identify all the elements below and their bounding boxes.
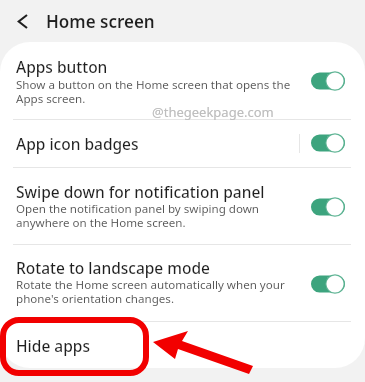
button[interactable]: Swipe down for notification panel bbox=[0, 168, 365, 244]
button[interactable]: App icon badges toggle bbox=[311, 133, 345, 153]
staticText: phone's orientation changes. bbox=[16, 291, 175, 307]
button[interactable]: App icon badges bbox=[0, 120, 365, 167]
button[interactable]: Hide apps bbox=[0, 322, 365, 368]
staticText: Show a button on the Home screen that op… bbox=[16, 77, 291, 93]
staticText: Apps screen. bbox=[16, 91, 86, 107]
staticText: Apps button bbox=[16, 56, 108, 77]
staticText: Rotate the Home screen automatically whe… bbox=[16, 277, 285, 293]
staticText: Swipe down for notification panel bbox=[16, 181, 265, 202]
button[interactable]: Back bbox=[18, 10, 27, 32]
button[interactable]: Apps button toggle bbox=[311, 71, 345, 91]
staticText: Home screen bbox=[46, 10, 155, 33]
button[interactable]: Apps button bbox=[0, 42, 365, 119]
staticText: App icon badges bbox=[16, 133, 139, 154]
staticText: Rotate to landscape mode bbox=[16, 257, 210, 278]
staticText: Open the notification panel by swiping d… bbox=[16, 201, 260, 217]
staticText: @thegeekpage.com bbox=[152, 103, 274, 121]
staticText: anywhere on the Home screen. bbox=[16, 215, 186, 231]
button[interactable]: Rotate to landscape mode bbox=[0, 245, 365, 321]
staticText: Hide apps bbox=[16, 335, 90, 356]
button[interactable]: Rotate to landscape mode toggle bbox=[311, 274, 345, 294]
button[interactable]: Swipe down for notification panel toggle bbox=[311, 197, 345, 217]
